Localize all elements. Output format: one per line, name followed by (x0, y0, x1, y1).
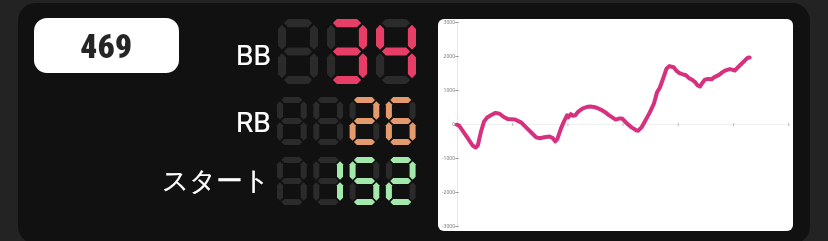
staticText: -2000 (441, 189, 455, 196)
staticText: -3000 (441, 223, 455, 230)
staticText: BB (236, 39, 271, 72)
staticText: -1000 (441, 155, 455, 162)
button[interactable]: 469 (34, 18, 179, 73)
staticText: 0 (452, 121, 455, 128)
staticText: 2000 (443, 53, 455, 60)
staticText: 469 (80, 26, 133, 66)
staticText: 3000 (443, 19, 455, 26)
staticText: スタート (162, 164, 270, 197)
staticText: 1000 (443, 87, 455, 94)
staticText: RB (236, 106, 271, 139)
